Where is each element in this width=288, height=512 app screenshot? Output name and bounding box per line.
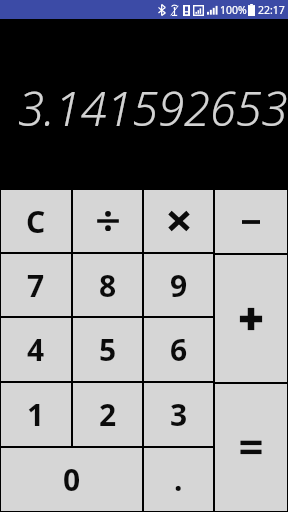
button[interactable]: Plus <box>215 255 287 382</box>
button[interactable]: Divide <box>73 190 142 252</box>
staticText: 3 <box>170 394 188 435</box>
staticText: 100% <box>220 3 247 17</box>
staticText: 9 <box>170 265 188 306</box>
button[interactable]: 0 <box>1 448 142 511</box>
staticText: 5 <box>99 329 117 370</box>
staticText: 0 <box>63 459 81 500</box>
staticText: 6 <box>170 329 188 370</box>
button[interactable]: Equals <box>215 384 287 511</box>
staticText: 2 <box>99 394 117 435</box>
staticText: 3.1415926535 <box>18 76 288 140</box>
button[interactable]: 5 <box>73 318 142 381</box>
staticText: 8 <box>99 265 117 306</box>
button[interactable]: 4 <box>1 318 71 381</box>
button[interactable]: . <box>144 448 213 511</box>
staticText: 4 <box>27 329 45 370</box>
staticText: C <box>26 201 46 242</box>
button[interactable]: 2 <box>73 383 142 446</box>
staticText: 7 <box>27 265 45 306</box>
button[interactable]: 9 <box>144 254 213 316</box>
button[interactable]: 1 <box>1 383 71 446</box>
button[interactable]: 6 <box>144 318 213 381</box>
staticText: . <box>174 459 183 500</box>
button[interactable]: Minus <box>215 190 287 253</box>
button[interactable]: C <box>1 190 71 252</box>
button[interactable]: 8 <box>73 254 142 316</box>
button[interactable]: Multiply <box>144 190 213 252</box>
button[interactable]: 7 <box>1 254 71 316</box>
staticText: 1 <box>27 394 45 435</box>
button[interactable]: 3 <box>144 383 213 446</box>
staticText: 22:17 <box>258 3 285 17</box>
